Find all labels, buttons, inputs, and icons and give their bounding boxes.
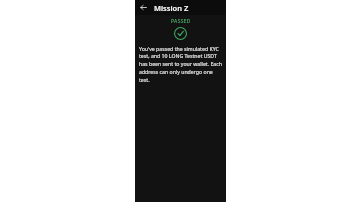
staticText: PASSED: [171, 18, 191, 25]
button[interactable]: Back: [138, 2, 149, 13]
staticText: You've passed the simulated KYC test, an…: [139, 45, 222, 84]
staticText: Mission Z: [154, 3, 189, 13]
